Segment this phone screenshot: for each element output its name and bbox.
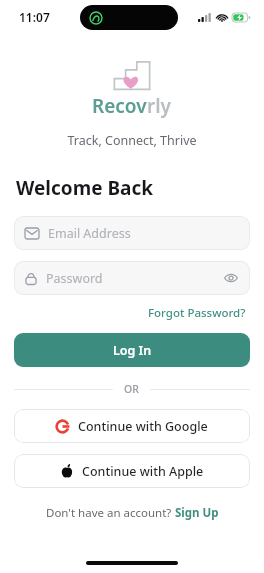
staticText: Continue with Google (78, 418, 208, 435)
button[interactable]: Sign Up (175, 505, 219, 521)
button[interactable]: Log In (14, 333, 250, 367)
staticText: rly (147, 93, 172, 119)
button[interactable]: Continue with Google (14, 409, 250, 443)
button[interactable]: Show password (222, 271, 240, 285)
staticText: Track, Connect, Thrive (0, 132, 264, 149)
staticText: Email Address (48, 225, 131, 242)
button[interactable]: Email Address field (14, 216, 250, 250)
staticText: Continue with Apple (82, 463, 204, 480)
staticText: Log In (113, 342, 152, 359)
staticText: Forgot Password? (148, 305, 246, 321)
staticText: Don't have an account? (46, 505, 175, 521)
button[interactable]: Password field (14, 261, 250, 295)
staticText: OR (124, 382, 139, 396)
staticText: Sign Up (175, 505, 219, 521)
staticText: Welcome Back (16, 175, 154, 201)
staticText: 11:07 (19, 9, 50, 25)
staticText: Password (46, 270, 222, 287)
staticText: Recov (92, 93, 147, 119)
button[interactable]: Forgot Password? (145, 302, 249, 324)
button[interactable]: Continue with Apple (14, 454, 250, 488)
